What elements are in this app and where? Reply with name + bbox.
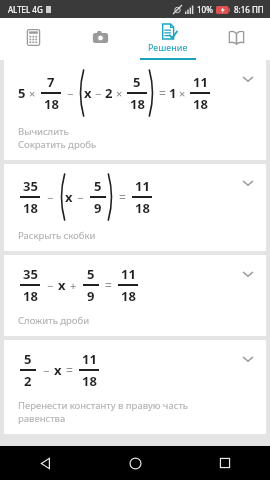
staticText: x: [84, 84, 92, 102]
staticText: 35: [23, 265, 38, 283]
staticText: =: [119, 189, 126, 205]
button[interactable]: 5: [4, 60, 266, 160]
staticText: равенства: [18, 412, 66, 425]
staticText: Раскрыть скобки: [18, 229, 96, 242]
staticText: 2: [24, 372, 32, 390]
staticText: 18: [44, 95, 59, 113]
staticText: 10%: [197, 4, 213, 15]
staticText: −: [67, 86, 74, 101]
staticText: 18: [23, 199, 38, 217]
button[interactable]: Expand step: [241, 72, 255, 86]
staticText: 18: [121, 287, 136, 305]
staticText: 5: [18, 84, 26, 102]
staticText: 18: [135, 199, 150, 217]
staticText: =: [159, 85, 166, 101]
staticText: +: [70, 278, 77, 293]
staticText: 18: [130, 95, 145, 113]
staticText: 11: [135, 177, 150, 195]
button[interactable]: 5: [4, 340, 266, 434]
staticText: −: [95, 86, 102, 101]
staticText: −: [77, 190, 84, 205]
button[interactable]: 35: [4, 255, 266, 336]
staticText: 11: [193, 73, 208, 91]
staticText: 9: [87, 287, 95, 305]
staticText: Сократить дробь: [18, 138, 97, 151]
staticText: Вычислить: [18, 125, 69, 138]
button[interactable]: Recents: [180, 446, 270, 480]
staticText: ×: [116, 86, 123, 101]
staticText: ×: [179, 86, 186, 101]
staticText: 11: [82, 350, 97, 368]
staticText: Решение: [148, 41, 188, 53]
staticText: Сложить дроби: [18, 314, 90, 327]
staticText: 7: [47, 73, 55, 91]
button[interactable]: Expand step: [241, 176, 255, 190]
staticText: 11: [121, 265, 136, 283]
staticText: 1: [169, 84, 177, 102]
staticText: 9: [94, 199, 102, 217]
staticText: x: [65, 188, 73, 206]
staticText: 5: [94, 177, 102, 195]
staticText: Перенести константу в правую часть: [18, 399, 188, 412]
staticText: x: [54, 361, 62, 379]
staticText: 18: [23, 287, 38, 305]
staticText: x: [58, 276, 66, 294]
button[interactable]: Expand step: [241, 267, 255, 281]
button[interactable]: Camera: [67, 18, 134, 60]
staticText: 5: [24, 350, 32, 368]
staticText: =: [105, 277, 112, 293]
button[interactable]: Back: [0, 446, 90, 480]
staticText: 35: [23, 177, 38, 195]
staticText: −: [47, 278, 54, 293]
staticText: 5: [133, 73, 141, 91]
staticText: −: [43, 363, 50, 378]
button[interactable]: Dictionary: [202, 18, 270, 60]
button[interactable]: 35: [4, 164, 266, 251]
staticText: 18: [82, 372, 97, 390]
staticText: ×: [29, 86, 36, 101]
staticText: =: [66, 362, 73, 378]
staticText: 8:16 ПП: [234, 4, 264, 15]
staticText: 2: [105, 84, 113, 102]
staticText: 18: [193, 95, 208, 113]
button[interactable]: Решение: [134, 18, 202, 60]
staticText: ALTEL 4G: [8, 4, 43, 15]
button[interactable]: Calculator: [0, 18, 67, 60]
button[interactable]: Home: [90, 446, 180, 480]
staticText: −: [47, 190, 54, 205]
button[interactable]: Expand step: [241, 352, 255, 366]
staticText: 5: [87, 265, 95, 283]
